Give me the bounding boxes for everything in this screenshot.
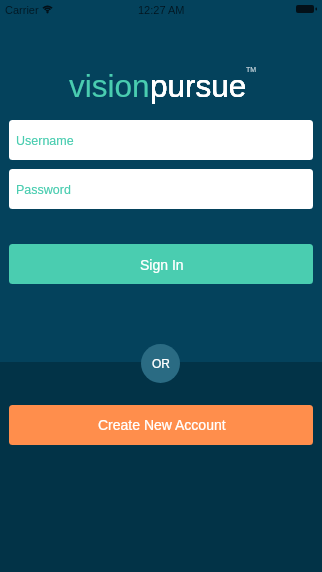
staticText: OR <box>152 357 170 370</box>
button[interactable]: Password <box>9 169 313 209</box>
staticText: Sign In <box>140 257 184 273</box>
staticText: Username <box>16 134 74 148</box>
staticText: pursue <box>150 68 247 103</box>
button[interactable]: OR <box>141 344 180 383</box>
staticText: Carrier <box>5 4 39 16</box>
button[interactable]: Username <box>9 120 313 160</box>
staticText: Create New Account <box>98 417 226 433</box>
staticText: 12:27 AM <box>138 4 185 16</box>
other: Battery full <box>296 5 316 13</box>
staticText: Password <box>16 183 71 197</box>
staticText: TM <box>246 66 257 74</box>
button[interactable]: Create New Account <box>9 405 313 445</box>
button[interactable]: Sign In <box>9 244 313 284</box>
staticText: pursue <box>150 68 247 103</box>
other: Wi-Fi signal <box>42 4 53 13</box>
staticText: vision <box>69 68 150 103</box>
